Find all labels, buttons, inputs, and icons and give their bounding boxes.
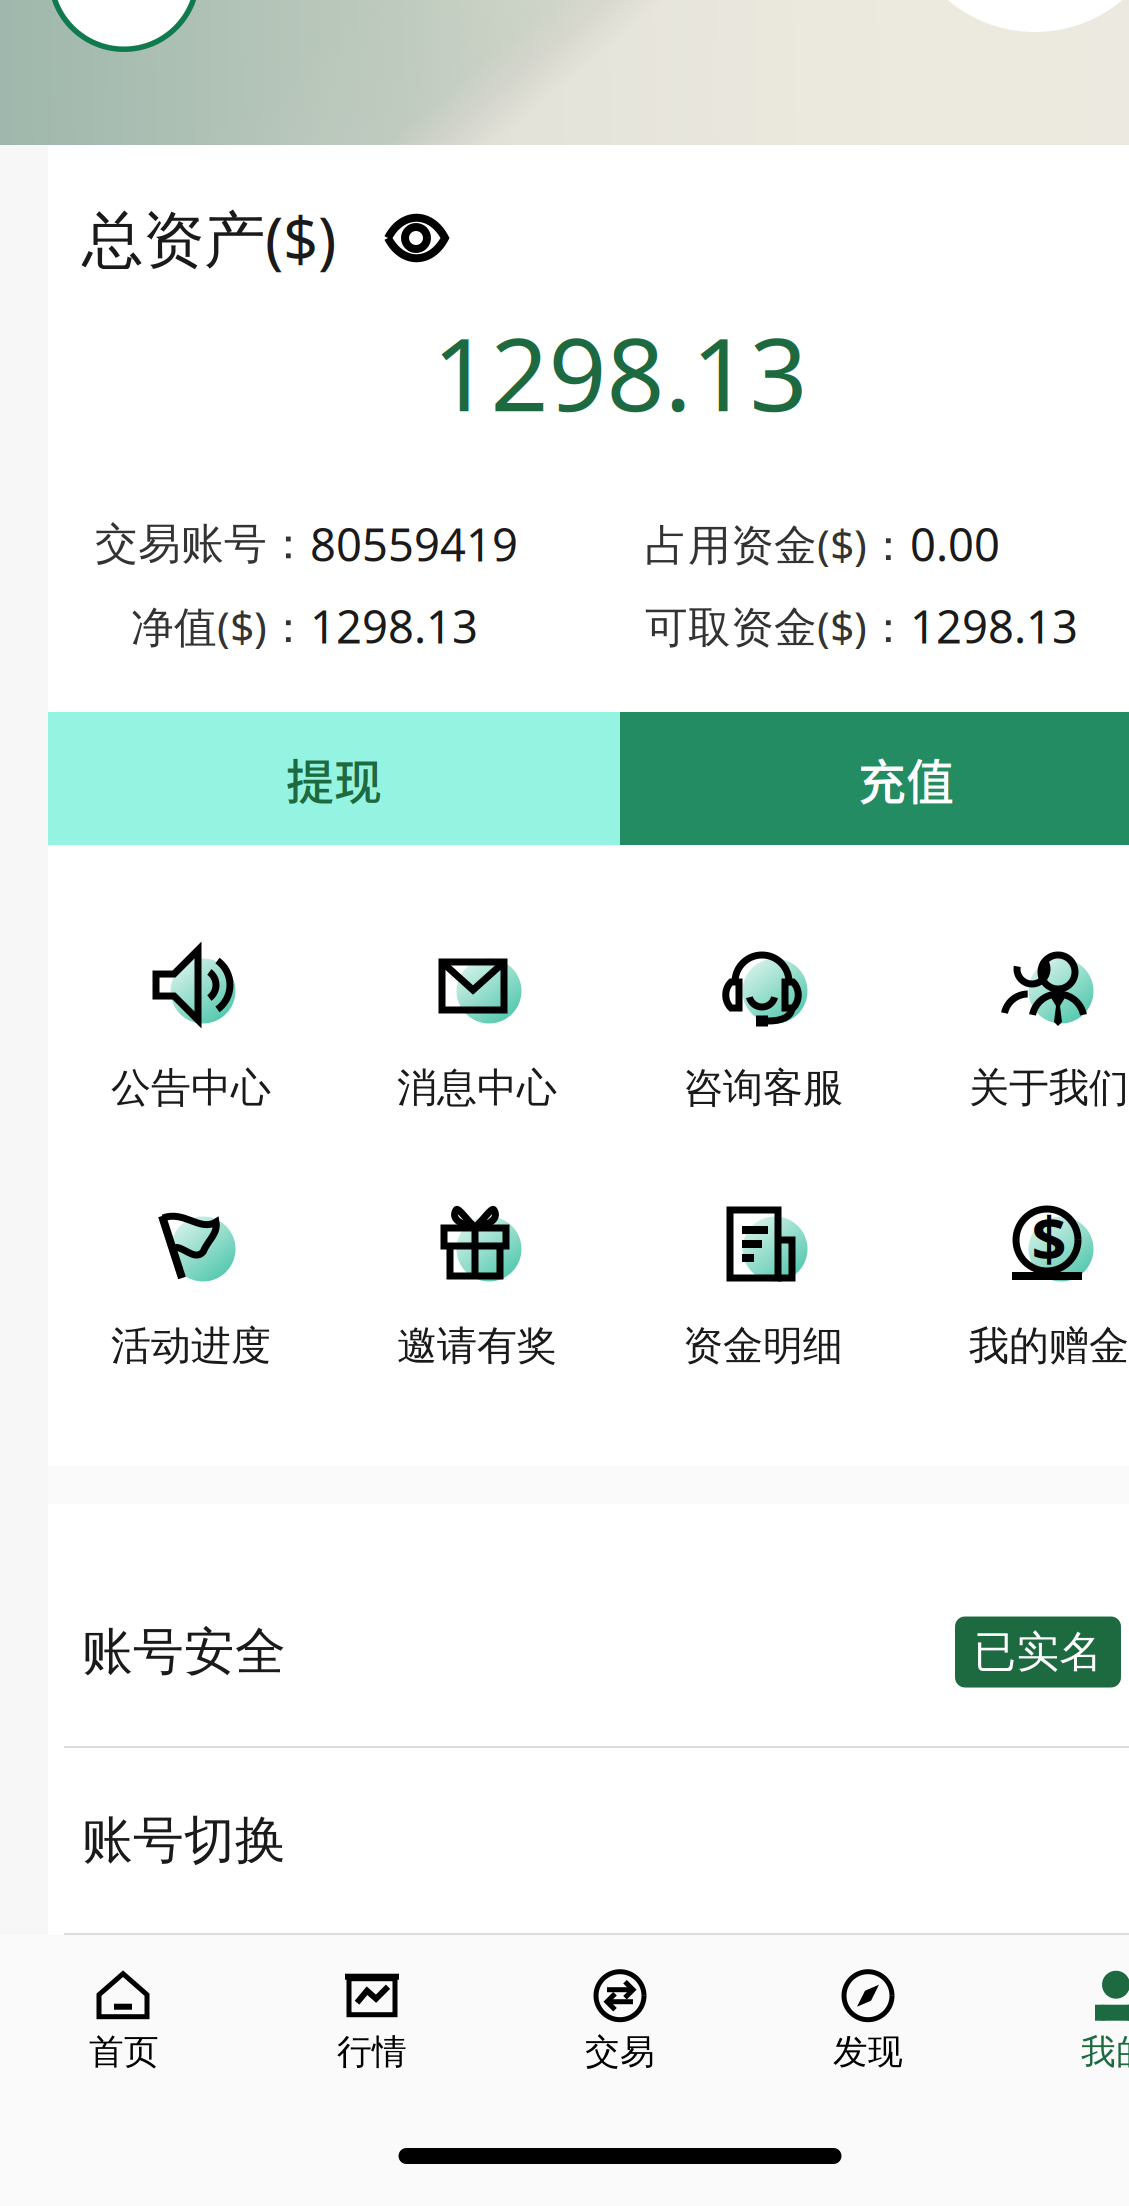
staticText: 交易账号： <box>95 518 310 570</box>
staticText: 首页 <box>89 2031 159 2073</box>
button[interactable]: $ <box>906 1193 1129 1371</box>
button[interactable]: 关于我们 <box>906 935 1129 1113</box>
staticText: 可取资金($)： <box>645 598 910 654</box>
staticText: 邀请有奖 <box>397 1321 557 1370</box>
button[interactable]: 充值 <box>620 712 1129 845</box>
button[interactable]: 咨询客服 <box>620 935 906 1113</box>
button[interactable]: 活动进度 <box>48 1193 334 1371</box>
staticText: 充值 <box>858 744 954 813</box>
staticText: 账号切换 <box>82 1809 286 1872</box>
staticText: 我的赠金 <box>969 1321 1129 1370</box>
button[interactable]: 发现 <box>744 1935 992 2105</box>
staticText: 活动进度 <box>111 1321 271 1370</box>
button[interactable]: 账号安全 <box>48 1504 1129 1746</box>
staticText: 提现 <box>286 744 382 813</box>
button[interactable]: 资金明细 <box>620 1193 906 1371</box>
staticText: $ <box>1031 1196 1066 1278</box>
staticText: 占用资金($)： <box>645 516 910 572</box>
button[interactable]: 消息中心 <box>334 935 620 1113</box>
button[interactable]: 账号切换 <box>48 1748 1129 1933</box>
staticText: 咨询客服 <box>683 1063 843 1112</box>
staticText: 关于我们 <box>969 1063 1129 1112</box>
button[interactable]: 首页 <box>0 1935 248 2105</box>
staticText: 行情 <box>337 2031 407 2073</box>
staticText: 我的 <box>1081 2031 1129 2073</box>
staticText: 1298.13 <box>310 596 478 656</box>
staticText: 账号安全 <box>82 1621 286 1683</box>
staticText: 交易 <box>585 2031 655 2073</box>
staticText: 发现 <box>833 2031 903 2073</box>
staticText: 80559419 <box>310 514 518 574</box>
staticText: 已实名 <box>973 1626 1102 1678</box>
staticText: 总资产($) <box>82 197 336 279</box>
button[interactable]: 交易 <box>496 1935 744 2105</box>
staticText: 1298.13 <box>432 305 807 439</box>
button[interactable]: 行情 <box>248 1935 496 2105</box>
button[interactable]: 邀请有奖 <box>334 1193 620 1371</box>
button[interactable]: 我的 <box>992 1935 1129 2105</box>
button[interactable]: 提现 <box>48 712 620 845</box>
staticText: 公告中心 <box>111 1063 271 1112</box>
button[interactable]: 公告中心 <box>48 935 334 1113</box>
staticText: 1298.13 <box>910 596 1078 656</box>
staticText: 消息中心 <box>397 1063 557 1112</box>
staticText: 净值($)： <box>131 598 310 654</box>
staticText: 0.00 <box>910 514 1000 574</box>
staticText: 资金明细 <box>683 1321 843 1370</box>
